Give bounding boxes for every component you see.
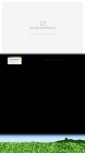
other: Image placeholder [40, 21, 46, 26]
button[interactable] [7, 56, 22, 65]
staticText: www.example.com [0, 32, 85, 36]
staticText: Loading results [43, 58, 66, 62]
staticText: Image not found [0, 26, 85, 30]
